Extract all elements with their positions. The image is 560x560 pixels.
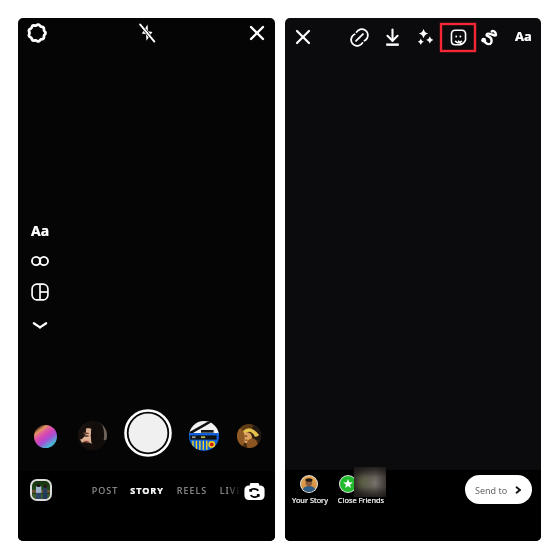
button[interactable]: Your Story <box>300 475 318 493</box>
staticText: Send to <box>475 484 508 496</box>
button[interactable]: Gallery <box>30 479 52 501</box>
button[interactable]: LIVE <box>201 480 261 500</box>
button[interactable]: Effect <box>78 421 107 450</box>
button[interactable]: Close <box>247 23 267 43</box>
button[interactable]: More options <box>29 314 51 336</box>
staticText: STORY <box>117 484 177 496</box>
staticText: Your Story <box>270 495 350 505</box>
button[interactable]: Settings <box>26 22 48 44</box>
button[interactable]: STORY <box>117 480 177 500</box>
button[interactable]: Layout <box>29 281 51 303</box>
staticText: REELS <box>162 484 222 496</box>
button[interactable]: Close <box>293 27 313 47</box>
button[interactable]: Draw <box>480 27 501 48</box>
button[interactable]: Aa <box>27 220 53 240</box>
button[interactable]: Stickers <box>449 28 468 47</box>
button[interactable]: Capture <box>124 409 172 457</box>
button[interactable]: Flash off <box>136 22 158 44</box>
staticText: Aa <box>515 27 532 45</box>
button[interactable]: Boomerang <box>29 250 51 272</box>
button[interactable]: Switch camera <box>244 481 265 502</box>
button[interactable]: REELS <box>162 480 222 500</box>
button[interactable]: Aa <box>511 26 535 46</box>
button[interactable]: Effect <box>237 424 261 448</box>
button[interactable]: Download <box>382 27 403 48</box>
button[interactable]: Effects <box>414 27 435 48</box>
button[interactable]: Link <box>349 27 370 48</box>
button[interactable]: Send to <box>465 475 532 504</box>
staticText: POST <box>75 484 135 496</box>
button[interactable]: Effect <box>34 425 57 448</box>
button[interactable]: Close Friends <box>339 475 357 493</box>
staticText: LIVE <box>201 484 261 496</box>
staticText: Close Friends <box>321 495 401 505</box>
button[interactable]: Effect <box>189 421 219 451</box>
button[interactable]: POST <box>75 480 135 500</box>
staticText: Aa <box>31 221 50 240</box>
